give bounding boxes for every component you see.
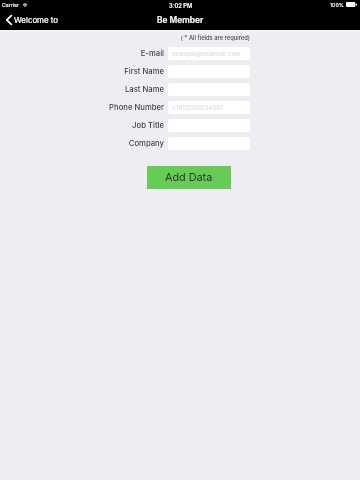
staticText: Phone Number	[109, 103, 164, 112]
staticText: Welcome to	[14, 15, 59, 25]
staticText: Be Member	[157, 15, 204, 25]
staticText: Carrier	[2, 2, 20, 8]
staticText: E-mail	[140, 49, 164, 58]
staticText: Job Title	[132, 121, 164, 130]
button[interactable]: Add Data	[147, 166, 231, 189]
button[interactable]: E-mail	[168, 47, 250, 60]
button[interactable]: Phone Number	[168, 101, 250, 114]
staticText: Add Data	[165, 171, 213, 184]
staticText: 3:02 PM	[169, 2, 193, 9]
staticText: ( * All fields are required)	[180, 34, 250, 41]
staticText: First Name	[124, 67, 164, 76]
staticText: example@example.com	[172, 50, 241, 57]
staticText: +18112301234567	[172, 104, 224, 111]
button[interactable]: Welcome to	[0, 12, 65, 28]
staticText: Last Name	[124, 85, 164, 94]
staticText: Company	[128, 139, 164, 148]
staticText: 100%	[330, 2, 344, 8]
